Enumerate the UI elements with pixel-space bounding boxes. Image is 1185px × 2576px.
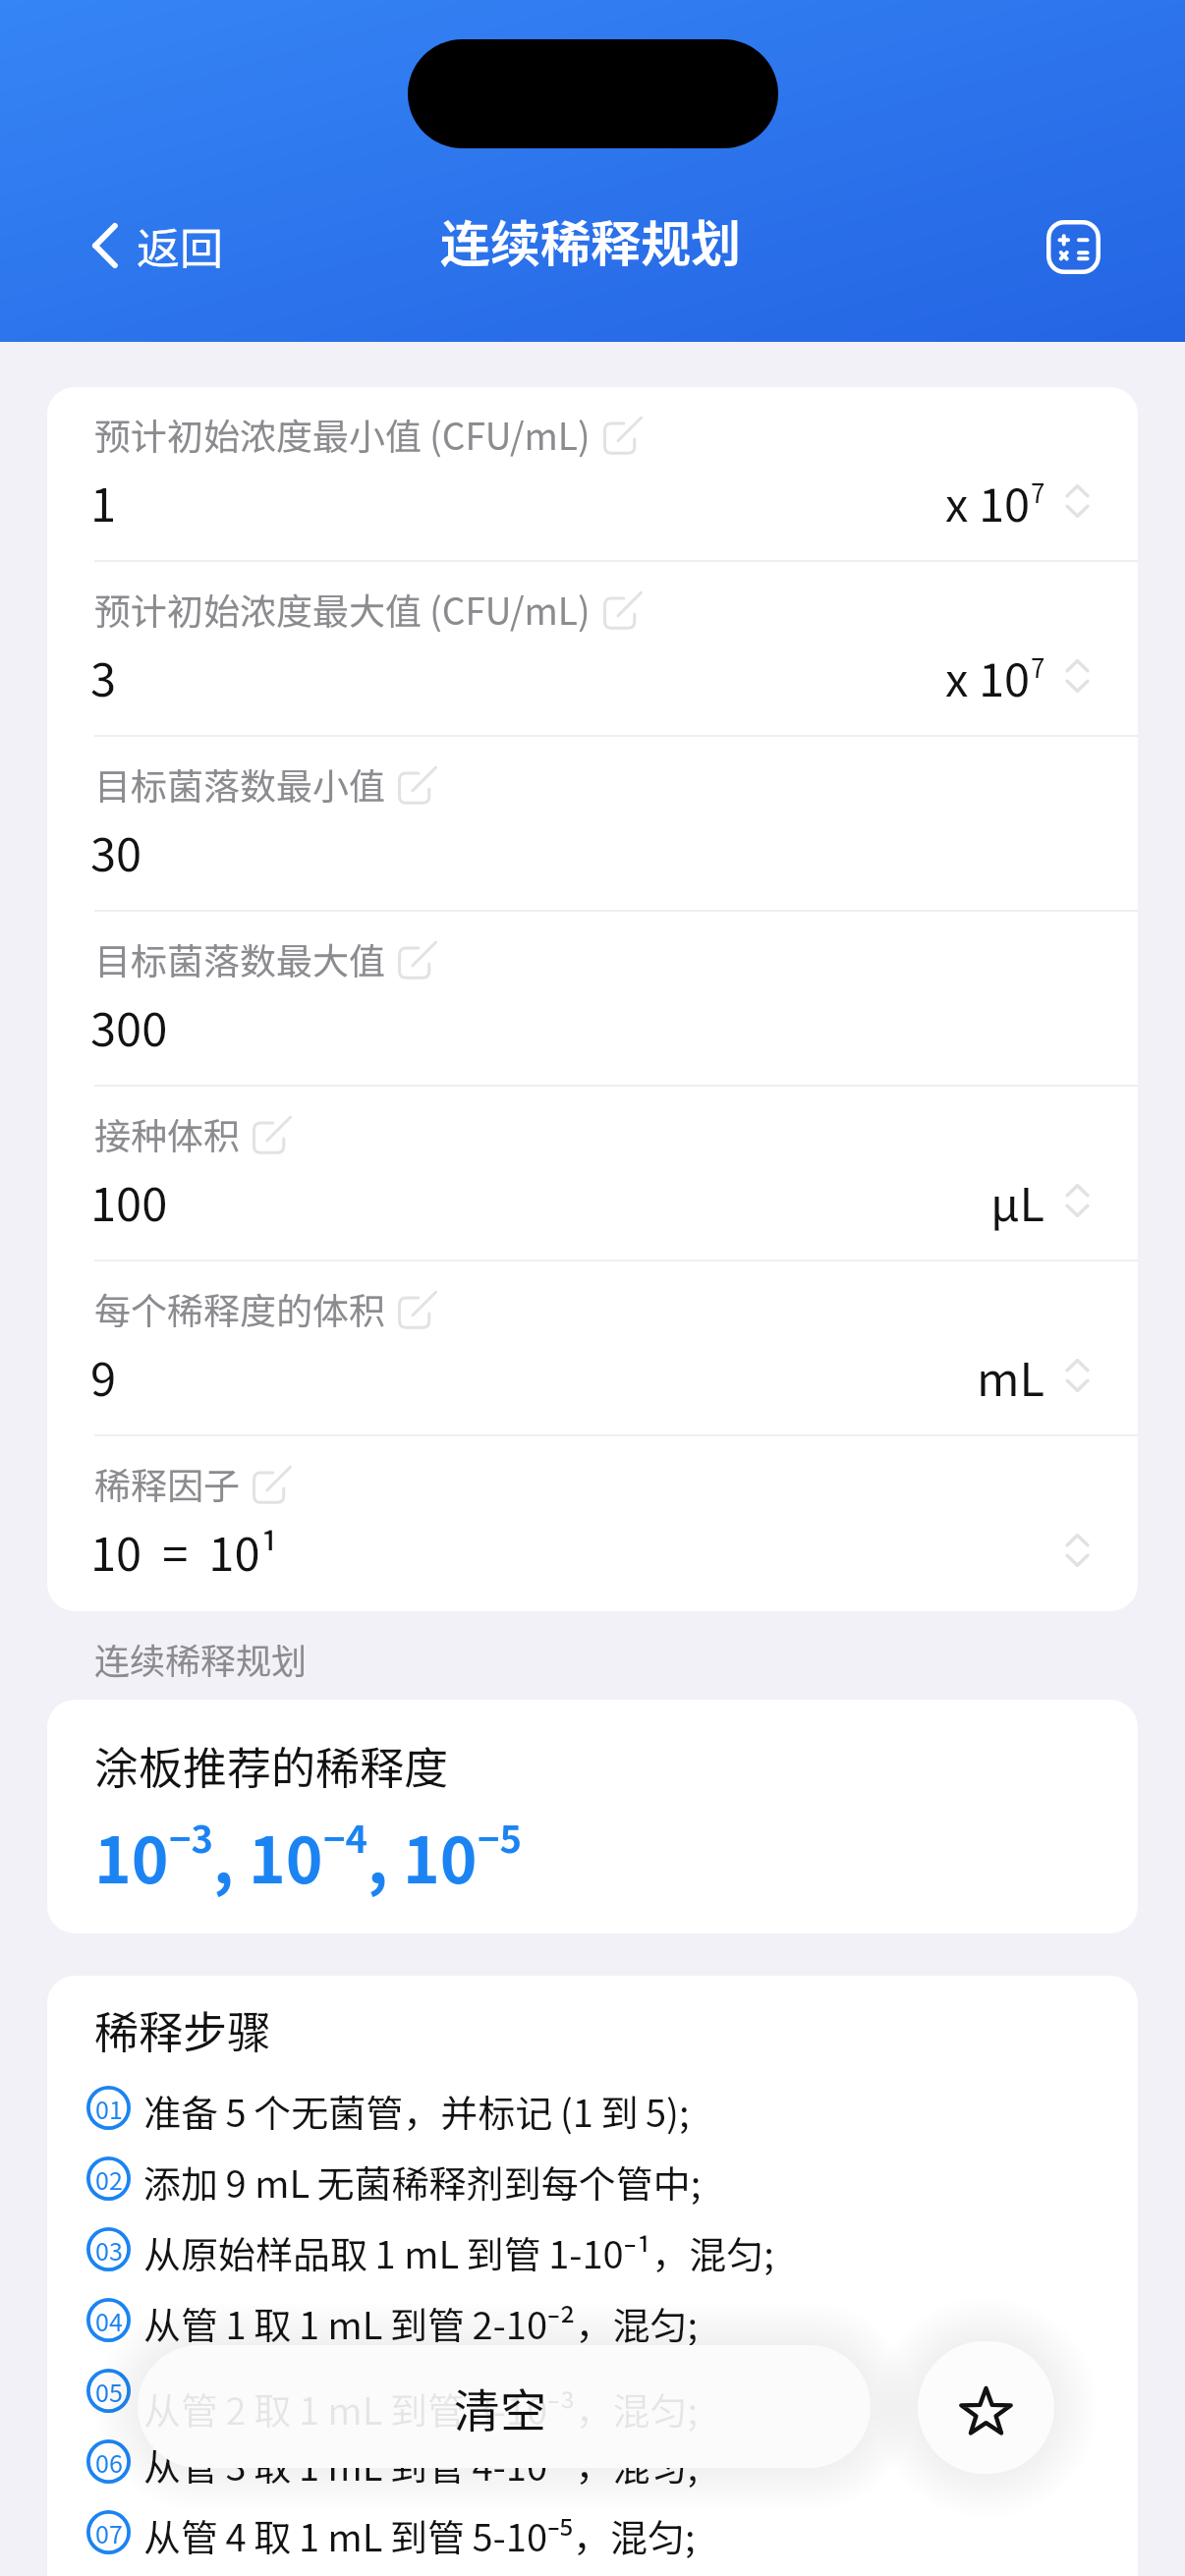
staticText: 准备 5 个无菌管，并标记 (1 到 5); — [143, 2084, 690, 2138]
staticText: 接种体积 — [94, 1107, 240, 1160]
staticText: 从管 2 取 1 mL 到管 3-10⁻³，混匀; — [143, 2367, 698, 2421]
staticText: 10 — [403, 1811, 478, 1902]
staticText: 03 — [95, 2232, 123, 2268]
staticText: 从原始样品取 1 mL 到管 1-10⁻¹，混匀; — [143, 2225, 774, 2279]
staticText: 1 — [90, 468, 117, 534]
staticText: 涂板推荐的稀释度 — [94, 1733, 449, 1797]
staticText: 07 — [95, 2515, 123, 2550]
staticText: , — [367, 1811, 403, 1902]
staticText: mL — [977, 1342, 1045, 1409]
staticText: 30 — [90, 817, 142, 884]
staticText: 100 — [90, 1167, 168, 1234]
button[interactable]: Favorite — [918, 2341, 1054, 2474]
button[interactable]: 每个稀释度的体积 — [47, 1261, 1138, 1436]
staticText: 04 — [95, 2303, 123, 2338]
staticText: 连续稀释规划 — [440, 204, 742, 277]
staticText: µL — [990, 1167, 1045, 1234]
button[interactable]: Calculator — [1046, 220, 1100, 274]
button[interactable]: 涂板推荐的稀释度 — [47, 1700, 1138, 1933]
button[interactable]: 目标菌落数最大值 — [47, 912, 1138, 1087]
staticText: 3 — [90, 643, 117, 709]
staticText: 06 — [95, 2444, 123, 2480]
staticText: −5 — [478, 1810, 522, 1864]
staticText: 稀释步骤 — [94, 1997, 272, 2061]
button[interactable]: 接种体积 — [47, 1087, 1138, 1261]
staticText: 预计初始浓度最大值 (CFU/mL) — [94, 583, 591, 636]
staticText: 目标菌落数最大值 — [94, 932, 385, 985]
staticText: 稀释因子 — [94, 1457, 240, 1510]
staticText: 10 = 10¹ — [90, 1517, 279, 1584]
staticText: 从管 2 取 1 mL 到管 3-10⁻³，混匀; — [143, 2381, 698, 2436]
staticText: 从管 4 取 1 mL 到管 5-10⁻⁵，混匀; — [143, 2508, 696, 2562]
button[interactable]: 稀释因子 — [47, 1436, 1138, 1611]
staticText: 从管 3 取 1 mL 到管 4-10⁻⁴，混匀; — [143, 2437, 698, 2492]
staticText: 每个稀释度的体积 — [94, 1282, 385, 1335]
staticText: 01 — [95, 2091, 123, 2126]
staticText: 300 — [90, 992, 168, 1059]
staticText: 目标菌落数最小值 — [94, 757, 385, 811]
staticText: 02 — [95, 2161, 123, 2197]
button[interactable]: 返回 — [89, 214, 239, 277]
staticText: −3 — [169, 1810, 213, 1864]
button[interactable]: 预计初始浓度最大值 (CFU/mL) — [47, 562, 1138, 737]
staticText: 清空 — [454, 2374, 546, 2440]
staticText: 10 — [94, 1811, 169, 1902]
staticText: 添加 9 mL 无菌稀释剂到每个管中; — [143, 2155, 702, 2209]
staticText: 10 — [249, 1811, 323, 1902]
button[interactable]: 目标菌落数最小值 — [47, 737, 1138, 912]
staticText: 返回 — [137, 214, 223, 277]
staticText: 7 — [1031, 474, 1045, 511]
staticText: 从管 1 取 1 mL 到管 2-10⁻²，混匀; — [143, 2296, 698, 2350]
staticText: 9 — [90, 1342, 117, 1409]
staticText: , — [213, 1811, 249, 1902]
staticText: 7 — [1031, 648, 1045, 686]
staticText: 连续稀释规划 — [94, 1633, 308, 1684]
staticText: x 10 — [945, 643, 1031, 709]
staticText: −4 — [323, 1810, 367, 1864]
button[interactable]: 从管 2 取 1 mL 到管 3-10⁻³，混匀; — [138, 2345, 871, 2468]
button[interactable]: 预计初始浓度最小值 (CFU/mL) — [47, 387, 1138, 562]
staticText: 05 — [95, 2374, 123, 2409]
staticText: x 10 — [945, 468, 1031, 534]
staticText: 预计初始浓度最小值 (CFU/mL) — [94, 408, 591, 461]
